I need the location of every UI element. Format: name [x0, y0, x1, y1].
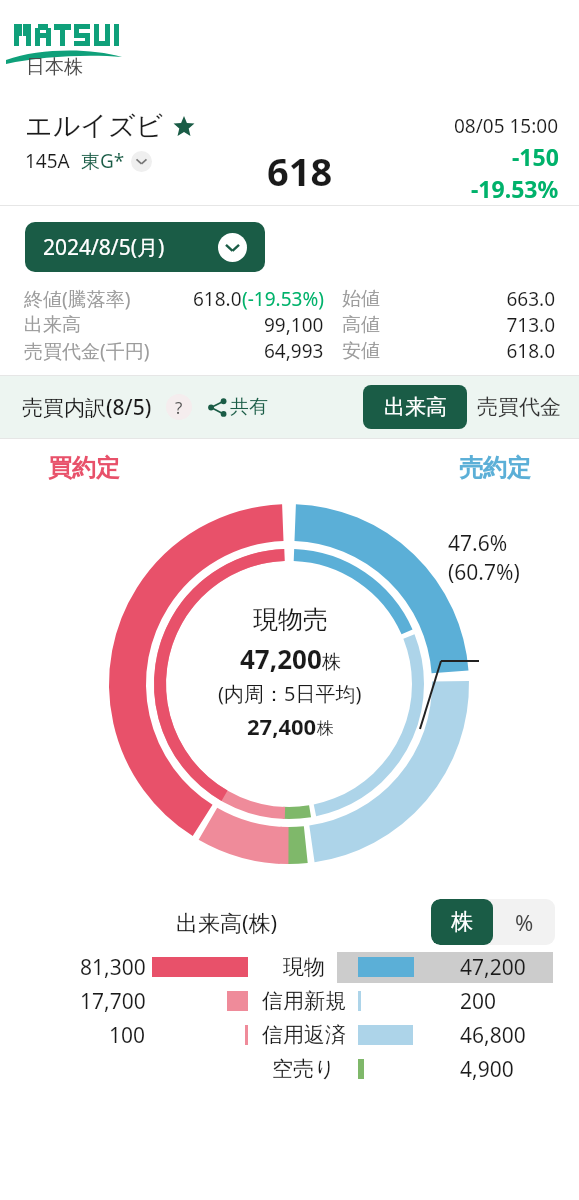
staticText: 現物: [283, 954, 325, 980]
staticText: ?: [175, 396, 183, 419]
staticText: 終値(騰落率): [24, 286, 164, 312]
staticText: 27,400: [247, 711, 317, 741]
staticText: 株: [451, 908, 473, 936]
button[interactable]: 売買代金: [477, 385, 561, 429]
staticText: 100: [109, 1021, 146, 1050]
staticText: 47,200: [460, 953, 526, 982]
staticText: (内周：5日平均): [218, 680, 362, 707]
staticText: 200: [460, 987, 497, 1016]
staticText: 買約定: [48, 453, 120, 483]
staticText: 81,300: [80, 953, 146, 982]
staticText: 663.0: [404, 286, 555, 312]
staticText: 空売り: [272, 1056, 336, 1082]
button[interactable]: %: [493, 899, 555, 945]
staticText: 安値: [342, 339, 404, 363]
staticText: 現物売: [253, 604, 328, 635]
staticText: -19.53%: [471, 173, 559, 204]
button[interactable]: 株: [431, 899, 493, 945]
button[interactable]: Expand market: [131, 151, 152, 172]
staticText: 47,200: [240, 641, 322, 676]
staticText: 618: [267, 145, 333, 197]
staticText: 売約定: [459, 453, 531, 483]
staticText: %: [515, 907, 534, 937]
staticText: 日本株: [26, 55, 83, 79]
staticText: 713.0: [404, 312, 555, 338]
staticText: 出来高(株): [176, 907, 278, 937]
staticText: 売買代金(千円): [24, 338, 164, 364]
staticText: 47.6%: [448, 529, 508, 558]
staticText: 64,993: [264, 338, 324, 364]
staticText: 株: [322, 650, 341, 674]
staticText: 145A: [25, 148, 70, 174]
staticText: (-19.53%): [242, 286, 324, 312]
staticText: 618.0: [404, 338, 555, 364]
staticText: 共有: [230, 395, 268, 419]
staticText: -150: [512, 141, 559, 172]
staticText: エルイズビ: [25, 109, 164, 143]
staticText: (60.7%): [448, 558, 520, 587]
button[interactable]: 共有: [204, 391, 272, 423]
staticText: 618.0: [193, 286, 242, 312]
staticText: 高値: [342, 313, 404, 337]
button[interactable]: 出来高: [363, 385, 467, 429]
staticText: 出来高: [384, 394, 447, 420]
staticText: 信用返済: [262, 1022, 346, 1048]
staticText: 99,100: [264, 312, 324, 338]
staticText: 4,900: [460, 1055, 514, 1084]
staticText: 始値: [342, 287, 404, 311]
staticText: 売買内訳(8/5): [22, 393, 152, 422]
staticText: 出来高: [24, 313, 164, 337]
staticText: 株: [317, 718, 334, 739]
button[interactable]: Help: [166, 394, 192, 420]
staticText: 東G*: [81, 148, 125, 174]
staticText: 17,700: [80, 987, 146, 1016]
button[interactable]: 2024/8/5(月): [25, 222, 265, 272]
staticText: 08/05 15:00: [454, 113, 559, 139]
staticText: 売買代金: [477, 394, 561, 420]
staticText: 信用新規: [262, 988, 346, 1014]
staticText: 2024/8/5(月): [43, 233, 165, 262]
staticText: 46,800: [460, 1021, 526, 1050]
